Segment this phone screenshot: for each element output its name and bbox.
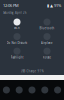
staticText: ▮ ▲ 91%	[47, 3, 61, 8]
button[interactable]: Do Not Disturb	[3, 33, 31, 45]
button[interactable]: App 3	[26, 86, 38, 93]
button[interactable]: Rotate	[33, 48, 61, 59]
button[interactable]: App 5	[51, 86, 64, 93]
staticText: Bluetooth	[39, 26, 54, 30]
staticText: 12:06 PM	[3, 3, 19, 8]
staticText: Airplane	[41, 41, 53, 45]
button[interactable]: App 4	[38, 86, 51, 93]
staticText: USB Charge 91%	[20, 69, 43, 73]
button[interactable]: Airplane	[33, 33, 61, 45]
staticText: Saturday, April 26	[3, 11, 27, 14]
staticText: Wi-Fi	[14, 26, 20, 30]
button[interactable]: Flashlight	[3, 48, 31, 59]
button[interactable]: App 2	[13, 86, 26, 93]
button[interactable]: App 1	[0, 86, 13, 93]
button[interactable]: Bluetooth	[33, 18, 61, 30]
staticText: Rotate	[42, 56, 51, 59]
staticText: Do Not Disturb	[6, 41, 27, 45]
staticText: Flashlight	[10, 56, 23, 59]
button[interactable]: Wi-Fi	[3, 18, 31, 30]
